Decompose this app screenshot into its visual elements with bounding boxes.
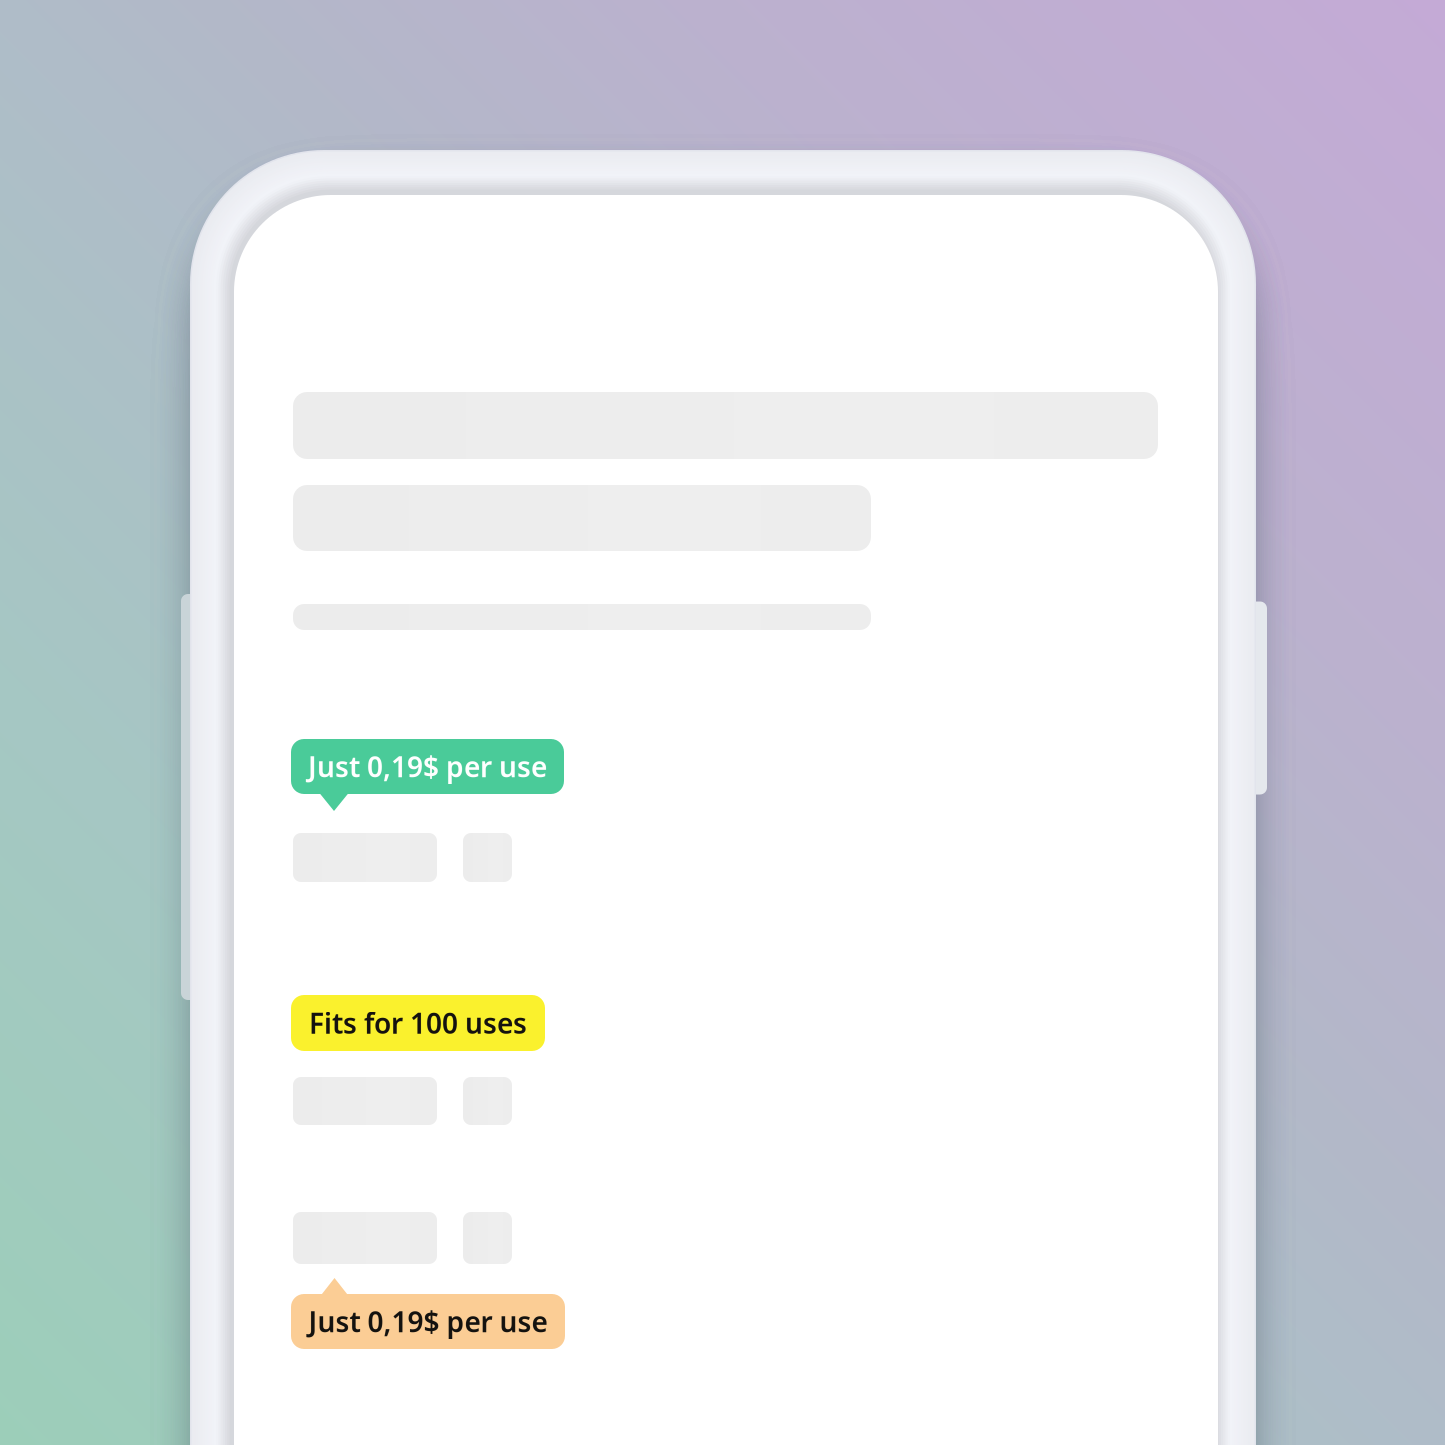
- staticText: Just 0,19$ per use: [308, 748, 547, 785]
- staticText: Fits for 100 uses: [309, 1004, 527, 1042]
- staticText: Just 0,19$ per use: [308, 1303, 547, 1340]
- button[interactable]: Just 0,19$ per use: [291, 739, 564, 794]
- button[interactable]: Just 0,19$ per use: [291, 1294, 565, 1349]
- button[interactable]: Fits for 100 uses: [291, 995, 545, 1051]
